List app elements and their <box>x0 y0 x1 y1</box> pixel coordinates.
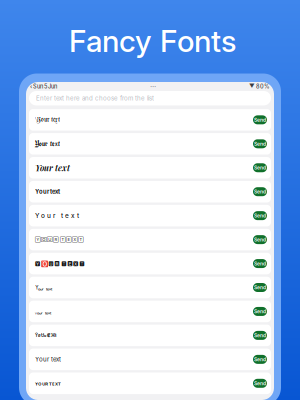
staticText: 🅈🄾🅄🅁 🅃🄴🅇🅃 <box>35 237 84 242</box>
button[interactable]: Your text <box>29 133 271 155</box>
button[interactable]: Send <box>253 235 267 244</box>
button[interactable]: Send <box>253 163 267 172</box>
button[interactable]: ʏᴏᴜʀ ᴛᴇxᴛ <box>29 372 271 394</box>
button[interactable]: Send <box>253 115 267 124</box>
button[interactable]: Send <box>253 379 267 388</box>
button[interactable]: Your text <box>29 181 271 202</box>
button[interactable]: Send <box>253 307 267 316</box>
staticText: Send <box>254 165 266 171</box>
button[interactable]: ȲøɄʀ ŧɆЖŧ <box>29 325 271 346</box>
staticText: Send <box>254 308 266 314</box>
button[interactable]: Your text <box>29 157 271 178</box>
staticText: Enter text here and choose from the list <box>36 94 154 102</box>
button[interactable]: 🆈🅾🆄🆁 🆃🅴🆇🆃 <box>29 253 271 274</box>
staticText: Send <box>254 236 266 243</box>
staticText: Y o u r t e x t <box>35 212 79 219</box>
staticText: Send <box>254 356 266 362</box>
staticText: Send <box>254 332 266 338</box>
staticText: Send <box>254 189 266 195</box>
staticText: Your text <box>35 116 60 123</box>
button[interactable]: Send <box>253 283 267 292</box>
staticText: Your text <box>35 139 60 148</box>
button[interactable]: Yₒᵤᵣ ₜₑₓₜ <box>29 277 271 298</box>
staticText: Send <box>254 260 266 267</box>
staticText: ‹ Sun 5 Jun <box>30 83 57 90</box>
staticText: ʏᴏᴜʀ ᴛᴇxᴛ <box>35 380 61 387</box>
staticText: Send <box>254 213 266 219</box>
button[interactable]: Send <box>253 211 267 220</box>
staticText: ▼ 80% <box>249 83 270 90</box>
button[interactable]: Send <box>253 187 267 196</box>
button[interactable]: ᵧₒᵤᵣ ₜₑₓₜ <box>29 301 271 322</box>
staticText: Your text <box>35 356 61 363</box>
button[interactable]: Y o u r t e x t <box>29 205 271 226</box>
staticText: ··· <box>150 82 156 91</box>
staticText: Fancy Fonts <box>69 23 236 59</box>
button[interactable]: Your text <box>29 349 271 370</box>
button[interactable]: Send <box>253 139 267 148</box>
staticText: Send <box>254 284 266 290</box>
staticText: Send <box>254 117 266 123</box>
staticText: Send <box>254 141 266 147</box>
staticText: Your text <box>35 188 60 195</box>
staticText: ȲøɄʀ ŧɆЖŧ <box>35 333 56 338</box>
button[interactable]: Send <box>253 355 267 364</box>
button[interactable]: Send <box>253 331 267 340</box>
staticText: Your text <box>35 162 70 173</box>
button[interactable]: Your text <box>29 109 271 131</box>
button[interactable]: Send <box>253 259 267 268</box>
staticText: ᵧₒᵤᵣ ₜₑₓₜ <box>35 308 51 315</box>
staticText: Yₒᵤᵣ ₜₑₓₜ <box>35 284 52 291</box>
staticText: 🆈🅾🆄🆁 🆃🅴🆇🆃 <box>35 260 85 267</box>
staticText: Send <box>254 380 266 386</box>
button[interactable]: 🅈🄾🅄🅁 🅃🄴🅇🅃 <box>29 229 271 250</box>
